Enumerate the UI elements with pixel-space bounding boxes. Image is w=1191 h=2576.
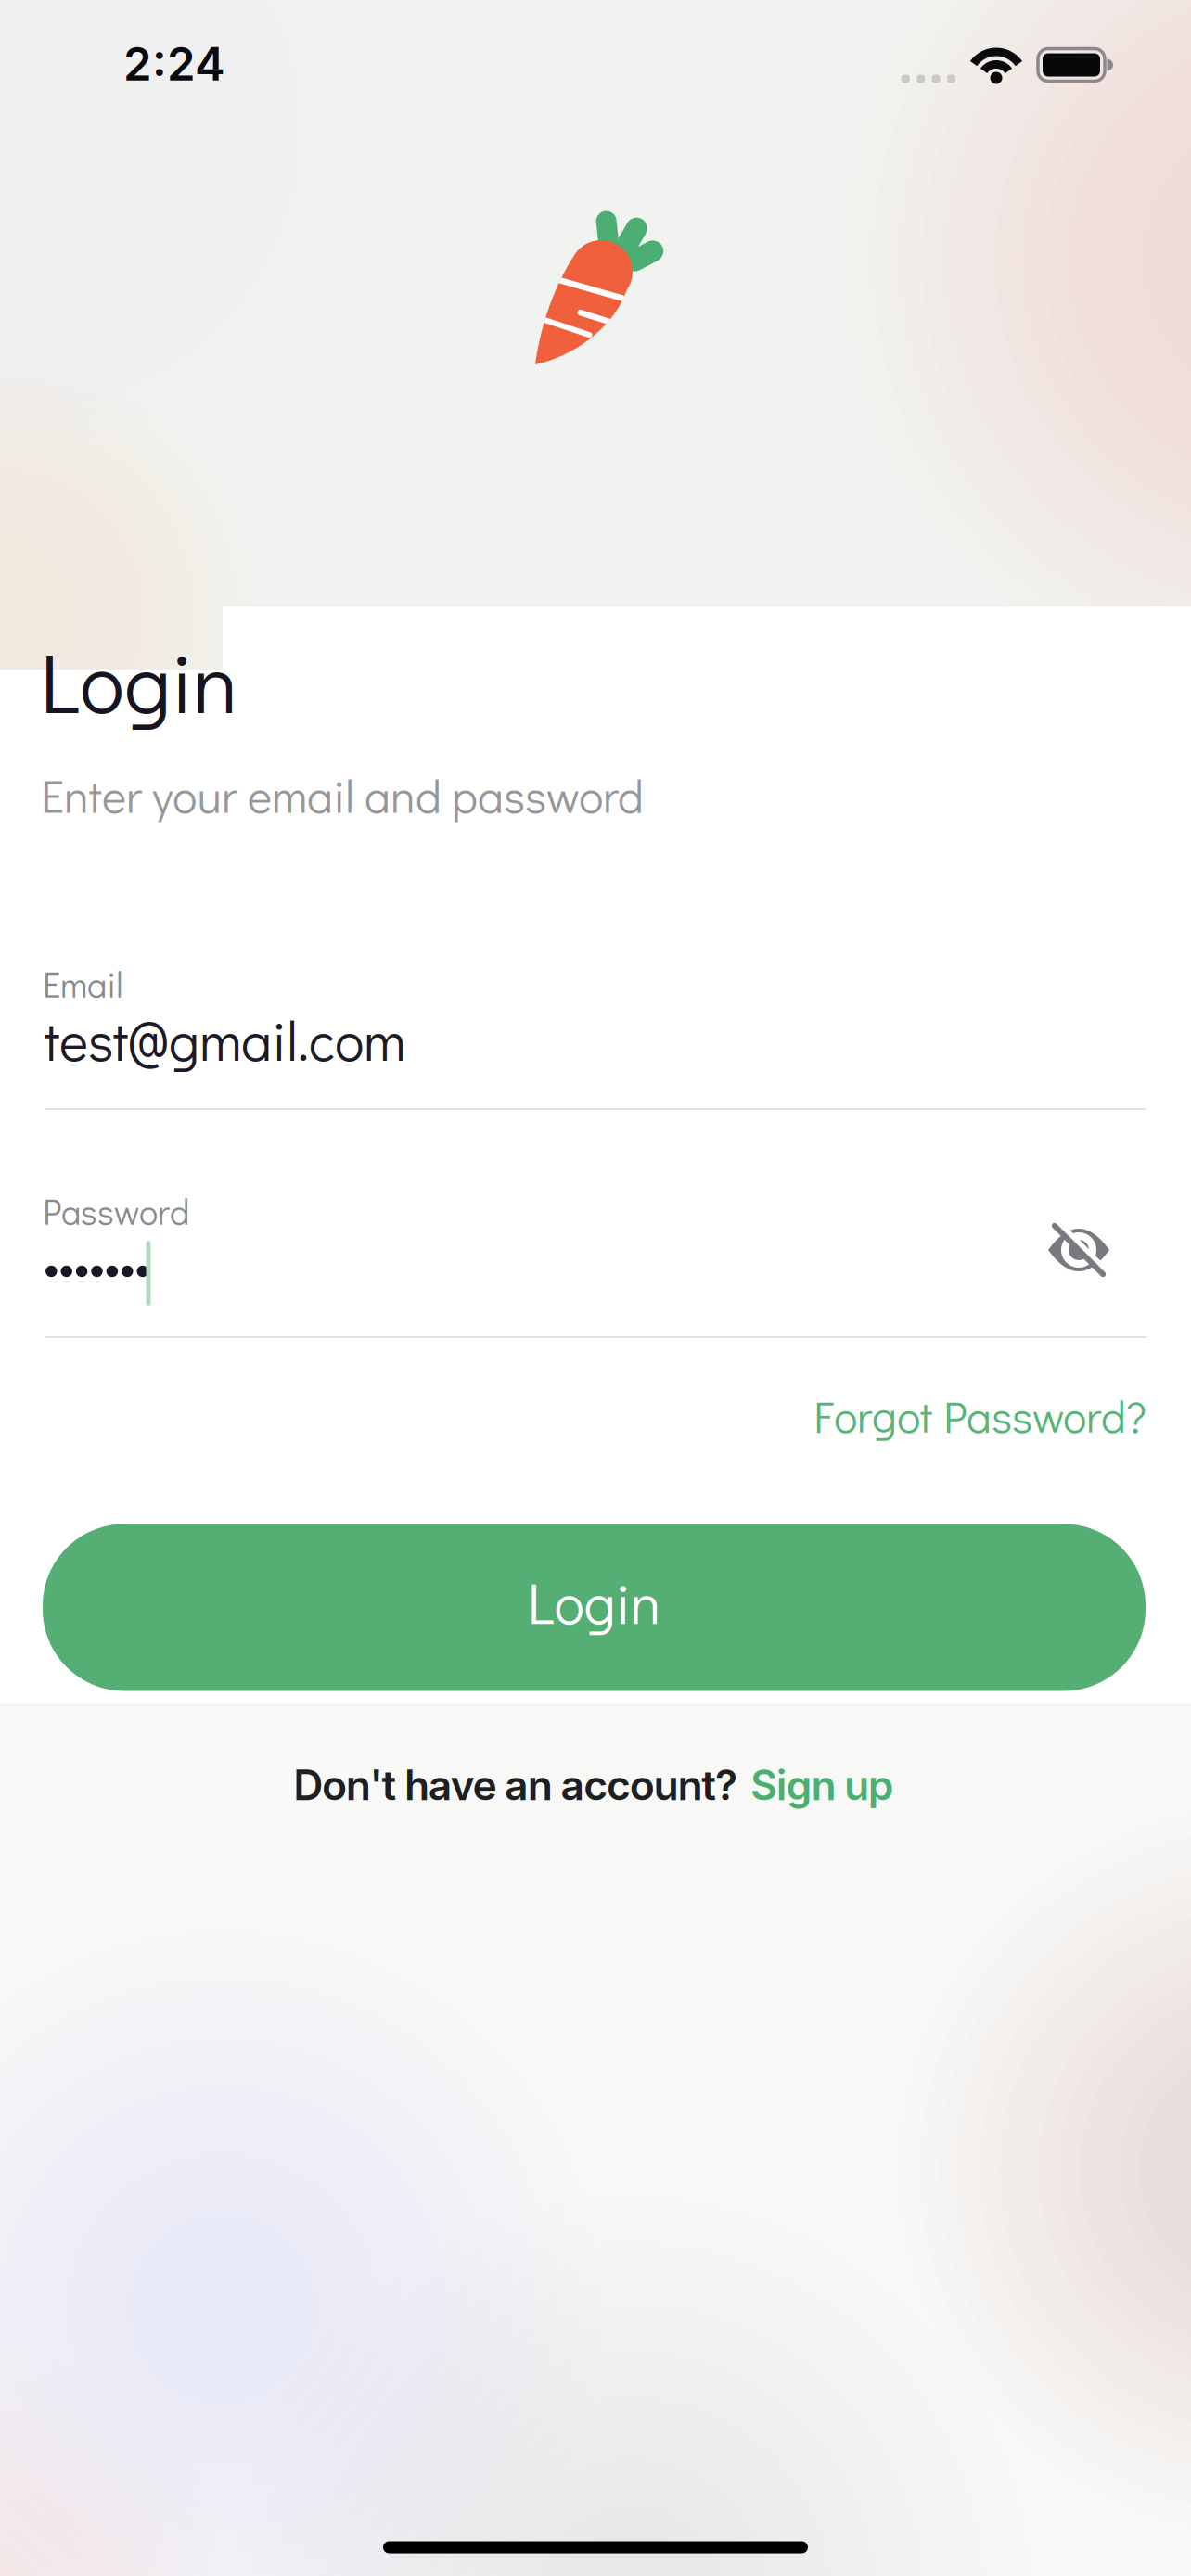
button[interactable]: Forgot	[813, 1386, 1146, 1444]
staticText: Enter your email and password	[41, 764, 644, 825]
staticText: Sign up	[750, 1760, 894, 1810]
staticText: test@gmail.com	[45, 1004, 405, 1075]
staticText: Login	[527, 1565, 661, 1639]
staticText: Email	[43, 961, 123, 1007]
staticText: Don't have an account?	[293, 1760, 737, 1810]
staticText: Forgot	[813, 1386, 932, 1444]
staticText: 2:24	[123, 37, 225, 92]
staticText: Password	[43, 1188, 189, 1234]
button[interactable]: Login	[43, 1524, 1146, 1691]
button[interactable]: Show password	[1045, 1220, 1112, 1287]
staticText: Login	[40, 626, 237, 735]
button[interactable]: Don't have an account?	[293, 1760, 894, 1810]
staticText: Password?	[943, 1386, 1146, 1444]
